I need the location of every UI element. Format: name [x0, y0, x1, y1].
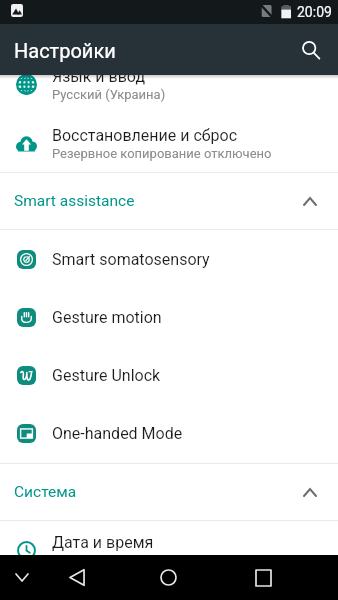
button[interactable]: Smart assistance — [0, 173, 338, 229]
staticText: Smart assistance — [14, 192, 304, 210]
button[interactable]: Восстановление и сброс — [0, 114, 338, 172]
button[interactable]: Gesture Unlock — [0, 346, 338, 404]
button[interactable]: Smart somatosensory — [0, 230, 338, 288]
staticText: Gesture Unlock — [52, 366, 161, 385]
button[interactable]: Язык и ввод — [0, 55, 338, 113]
staticText: Восстановление и сброс — [52, 126, 238, 145]
button[interactable]: Search — [291, 30, 331, 70]
button[interactable]: Home — [138, 555, 198, 600]
staticText: 20:09 — [297, 4, 332, 20]
button[interactable]: Gesture motion — [0, 288, 338, 346]
button[interactable]: One-handed Mode — [0, 404, 338, 462]
staticText: Дата и время — [52, 533, 154, 552]
button[interactable]: Hide keyboard — [0, 555, 44, 600]
staticText: Gesture motion — [52, 308, 162, 327]
staticText: Smart somatosensory — [52, 250, 210, 269]
button[interactable]: Система — [0, 464, 338, 520]
staticText: Часовой пояс: GMT+02:00 — [52, 553, 211, 568]
button[interactable]: Recents — [233, 555, 293, 600]
button[interactable]: Back — [48, 555, 106, 600]
staticText: Настройки — [14, 39, 116, 62]
staticText: Резервное копирование отключено — [52, 146, 272, 161]
staticText: Язык и ввод — [52, 67, 146, 86]
button[interactable]: Дата и время — [0, 521, 338, 579]
staticText: One-handed Mode — [52, 424, 183, 443]
staticText: Система — [14, 483, 304, 501]
staticText: Русский (Украина) — [52, 87, 166, 102]
